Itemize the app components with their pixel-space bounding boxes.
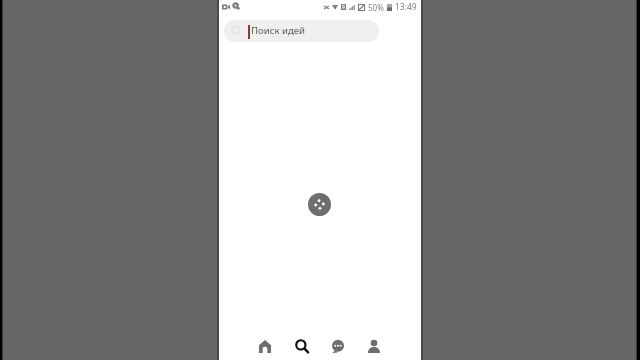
- button[interactable]: [224, 20, 379, 42]
- staticText: 13:49: [395, 1, 417, 13]
- button[interactable]: Search: [289, 330, 315, 360]
- button[interactable]: Messages: [325, 330, 351, 360]
- button[interactable]: Home: [252, 330, 278, 360]
- staticText: Поиск идей: [251, 24, 306, 37]
- button[interactable]: Profile: [361, 330, 387, 360]
- staticText: 50%: [368, 2, 384, 13]
